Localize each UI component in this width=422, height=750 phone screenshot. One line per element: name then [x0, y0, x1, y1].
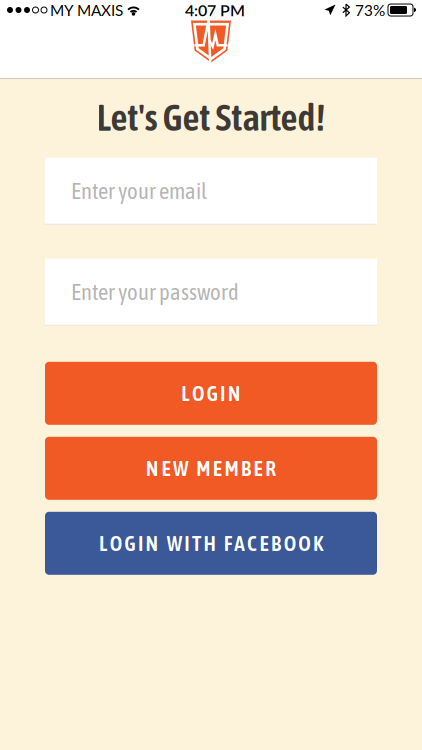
staticText: Enter your password: [71, 279, 239, 305]
button[interactable]: LOGIN: [45, 362, 377, 425]
staticText: LOGIN: [181, 381, 241, 405]
staticText: 4:07 PM: [185, 0, 245, 20]
button[interactable]: Enter your password: [45, 259, 377, 326]
staticText: 73%: [355, 1, 385, 19]
button[interactable]: Enter your email: [45, 158, 377, 225]
staticText: LOGIN WITH FACEBOOK: [99, 531, 323, 555]
staticText: Enter your email: [71, 178, 207, 204]
staticText: NEW MEMBER: [146, 456, 276, 480]
staticText: Let's Get Started!: [96, 96, 325, 139]
staticText: MY MAXIS: [50, 1, 123, 19]
button[interactable]: LOGIN WITH FACEBOOK: [45, 512, 377, 575]
button[interactable]: NEW MEMBER: [45, 437, 377, 500]
